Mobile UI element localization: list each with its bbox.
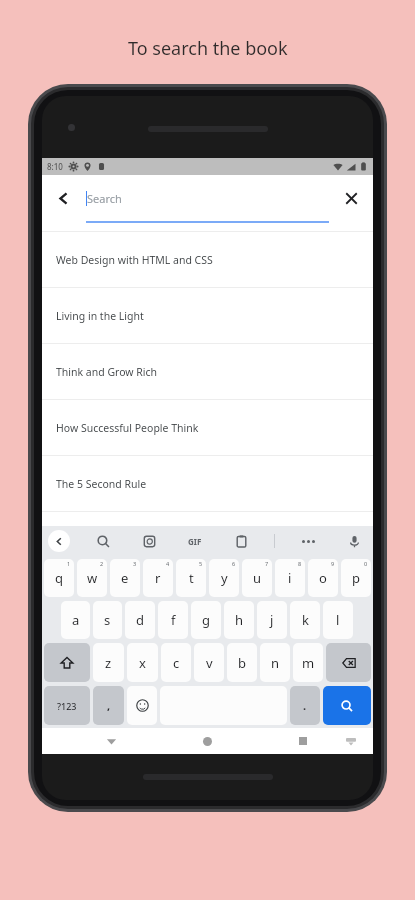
button[interactable]: t — [176, 559, 206, 597]
button[interactable]: Back — [42, 175, 86, 221]
button[interactable]: GIF — [182, 528, 208, 554]
staticText: How Successful People Think — [56, 421, 199, 435]
staticText: s — [104, 611, 111, 629]
button[interactable]: Web Design with HTML and CSS — [42, 232, 373, 288]
button[interactable]: b — [227, 643, 257, 682]
staticText: l — [336, 611, 340, 629]
staticText: t — [189, 569, 194, 587]
button[interactable]: Clipboard — [228, 528, 254, 554]
button[interactable]: e — [110, 559, 140, 597]
button[interactable]: r — [143, 559, 173, 597]
button[interactable]: Voice input — [341, 528, 367, 554]
button[interactable]: p — [341, 559, 371, 597]
button[interactable]: w — [77, 559, 107, 597]
button[interactable]: Living in the Light — [42, 288, 373, 344]
button[interactable]: Recents — [290, 728, 316, 754]
button[interactable]: . — [290, 686, 320, 725]
button[interactable]: Close toolbar — [48, 530, 70, 552]
staticText: Living in the Light — [56, 309, 144, 323]
staticText: k — [302, 611, 309, 629]
staticText: f — [171, 611, 176, 629]
button[interactable]: u — [242, 559, 272, 597]
staticText: z — [105, 654, 112, 672]
staticText: d — [136, 611, 144, 629]
staticText: e — [121, 569, 129, 587]
button[interactable]: c — [161, 643, 191, 682]
staticText: , — [107, 698, 111, 713]
staticText: i — [288, 569, 292, 587]
staticText: The 5 Second Rule — [56, 477, 147, 491]
staticText: 9 — [331, 560, 335, 567]
staticText: n — [271, 654, 280, 672]
staticText: 8:10 — [47, 161, 63, 172]
button[interactable]: i — [275, 559, 305, 597]
staticText: 8 — [298, 560, 302, 567]
staticText: 3 — [133, 560, 137, 567]
staticText: 4 — [166, 560, 170, 567]
staticText: GIF — [188, 536, 202, 547]
staticText: u — [253, 569, 262, 587]
staticText: g — [202, 611, 210, 629]
button[interactable]: s — [93, 601, 122, 639]
button[interactable]: How Successful People Think — [42, 400, 373, 456]
staticText: 5 — [199, 560, 203, 567]
staticText: Think and Grow Rich — [56, 365, 158, 379]
button[interactable]: Clear — [329, 175, 373, 221]
staticText: o — [319, 569, 327, 587]
staticText: x — [139, 654, 146, 672]
staticText: j — [270, 611, 274, 629]
staticText: w — [87, 569, 98, 587]
staticText: To search the book — [128, 36, 288, 61]
button[interactable]: Emoji — [127, 686, 157, 725]
button[interactable]: More — [295, 528, 321, 554]
staticText: 0 — [364, 560, 368, 567]
staticText: ?123 — [57, 700, 77, 712]
button[interactable]: Search — [90, 528, 116, 554]
button[interactable]: d — [125, 601, 155, 639]
staticText: 6 — [232, 560, 236, 567]
button[interactable]: Search — [86, 175, 329, 221]
button[interactable]: The 5 Second Rule — [42, 456, 373, 512]
staticText: h — [235, 611, 244, 629]
button[interactable]: ?123 — [44, 686, 90, 725]
button[interactable]: z — [93, 643, 124, 682]
staticText: . — [303, 698, 307, 713]
button[interactable]: Back — [98, 728, 124, 754]
staticText: v — [206, 654, 213, 672]
staticText: c — [173, 654, 180, 672]
button[interactable]: v — [194, 643, 224, 682]
button[interactable]: Shift — [44, 643, 90, 682]
staticText: b — [238, 654, 246, 672]
staticText: q — [55, 569, 63, 587]
staticText: Web Design with HTML and CSS — [56, 253, 213, 267]
button[interactable]: Backspace — [326, 643, 371, 682]
button[interactable]: , — [93, 686, 124, 725]
button[interactable]: j — [257, 601, 287, 639]
button[interactable]: y — [209, 559, 239, 597]
staticText: 1 — [67, 560, 71, 567]
button[interactable]: f — [158, 601, 188, 639]
button[interactable]: o — [308, 559, 338, 597]
button[interactable]: a — [61, 601, 90, 639]
button[interactable]: x — [127, 643, 158, 682]
staticText: r — [155, 569, 161, 587]
button[interactable]: k — [290, 601, 320, 639]
button[interactable]: Home — [194, 728, 220, 754]
button[interactable]: Search — [323, 686, 371, 725]
button[interactable]: q — [44, 559, 74, 597]
staticText: y — [221, 569, 228, 587]
staticText: 7 — [265, 560, 269, 567]
button[interactable]: g — [191, 601, 221, 639]
staticText: a — [72, 611, 80, 629]
button[interactable]: l — [323, 601, 353, 639]
button[interactable]: h — [224, 601, 254, 639]
button[interactable]: Think and Grow Rich — [42, 344, 373, 400]
button[interactable]: Switch keyboard — [339, 729, 363, 753]
button[interactable]: n — [260, 643, 290, 682]
staticText: p — [352, 569, 360, 587]
button[interactable]: Stickers — [136, 528, 162, 554]
staticText: Search — [87, 191, 122, 206]
button[interactable]: m — [293, 643, 323, 682]
staticText: m — [302, 654, 315, 672]
